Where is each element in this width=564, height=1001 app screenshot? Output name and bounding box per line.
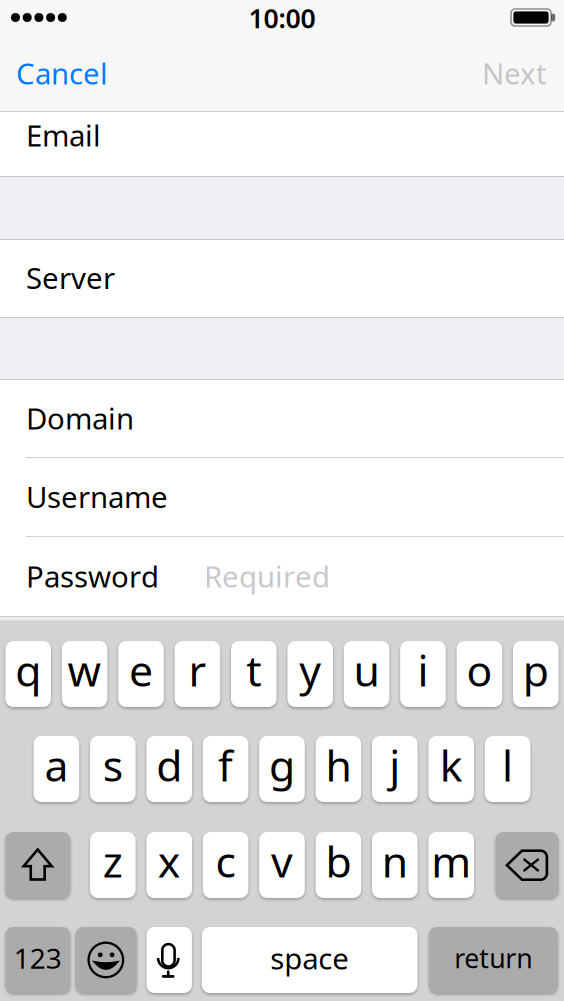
button[interactable]: p bbox=[513, 641, 559, 709]
button[interactable]: d bbox=[146, 736, 192, 804]
button[interactable]: f bbox=[203, 736, 248, 804]
button[interactable]: q bbox=[5, 641, 51, 709]
button[interactable]: n bbox=[372, 832, 418, 900]
staticText: k bbox=[440, 737, 463, 793]
button[interactable]: o bbox=[457, 641, 502, 709]
button[interactable]: l bbox=[485, 736, 530, 804]
button[interactable]: z bbox=[90, 832, 136, 900]
staticText: n bbox=[382, 833, 408, 889]
button[interactable]: Emoji bbox=[76, 927, 137, 995]
button[interactable]: v bbox=[259, 832, 305, 900]
button[interactable]: g bbox=[259, 736, 305, 804]
button[interactable]: Domain bbox=[0, 380, 564, 458]
staticText: q bbox=[15, 642, 41, 698]
button[interactable]: Email bbox=[0, 96, 564, 176]
staticText: h bbox=[325, 737, 351, 793]
staticText: b bbox=[325, 833, 351, 889]
button[interactable]: y bbox=[287, 641, 333, 709]
staticText: Next bbox=[482, 53, 547, 92]
staticText: i bbox=[417, 642, 428, 698]
staticText: x bbox=[158, 833, 181, 889]
button[interactable]: Cancel bbox=[0, 40, 160, 88]
button[interactable]: Server bbox=[0, 240, 564, 317]
button[interactable]: i bbox=[400, 641, 446, 709]
staticText: t bbox=[246, 642, 261, 698]
button[interactable]: 123 bbox=[5, 927, 70, 995]
button[interactable]: m bbox=[428, 832, 474, 900]
button[interactable]: Username bbox=[0, 458, 564, 537]
button[interactable]: s bbox=[90, 736, 136, 804]
staticText: u bbox=[354, 642, 380, 698]
staticText: f bbox=[218, 737, 233, 793]
button[interactable]: t bbox=[231, 641, 277, 709]
button[interactable]: b bbox=[316, 832, 361, 900]
button[interactable]: c bbox=[203, 832, 248, 900]
button[interactable]: k bbox=[428, 736, 474, 804]
button[interactable]: space bbox=[202, 927, 417, 995]
staticText: l bbox=[502, 737, 513, 793]
staticText: Server bbox=[26, 258, 115, 297]
staticText: space bbox=[270, 938, 349, 977]
staticText: 123 bbox=[14, 939, 62, 977]
button[interactable]: h bbox=[316, 736, 361, 804]
staticText: Required bbox=[204, 556, 330, 595]
button[interactable]: r bbox=[175, 641, 220, 709]
staticText: o bbox=[466, 642, 492, 698]
button[interactable]: u bbox=[344, 641, 389, 709]
button[interactable]: e bbox=[118, 641, 164, 709]
staticText: Cancel bbox=[16, 53, 108, 92]
button[interactable]: Password bbox=[0, 537, 564, 617]
staticText: r bbox=[188, 642, 206, 698]
button[interactable]: Delete bbox=[496, 832, 558, 900]
staticText: e bbox=[129, 642, 153, 698]
staticText: d bbox=[156, 737, 182, 793]
button[interactable]: w bbox=[62, 641, 107, 709]
staticText: z bbox=[103, 833, 123, 889]
staticText: s bbox=[103, 737, 123, 793]
staticText: v bbox=[271, 833, 293, 889]
button[interactable]: a bbox=[34, 736, 79, 804]
button[interactable]: j bbox=[372, 736, 418, 804]
button[interactable]: Next bbox=[0, 40, 149, 88]
staticText: Password bbox=[26, 556, 159, 595]
staticText: c bbox=[216, 833, 236, 889]
staticText: 10:00 bbox=[248, 0, 315, 36]
staticText: return bbox=[454, 940, 532, 976]
staticText: g bbox=[269, 737, 295, 793]
staticText: a bbox=[44, 737, 68, 793]
staticText: Email bbox=[26, 115, 101, 154]
staticText: j bbox=[389, 737, 400, 793]
staticText: Domain bbox=[26, 398, 134, 437]
button[interactable]: return bbox=[429, 927, 558, 995]
staticText: m bbox=[431, 833, 471, 889]
staticText: p bbox=[523, 642, 549, 698]
button[interactable]: Shift bbox=[5, 832, 70, 900]
staticText: w bbox=[68, 642, 102, 698]
staticText: y bbox=[299, 642, 321, 698]
button[interactable]: Dictation bbox=[146, 927, 192, 995]
button[interactable]: x bbox=[146, 832, 192, 900]
staticText: Username bbox=[26, 477, 168, 516]
